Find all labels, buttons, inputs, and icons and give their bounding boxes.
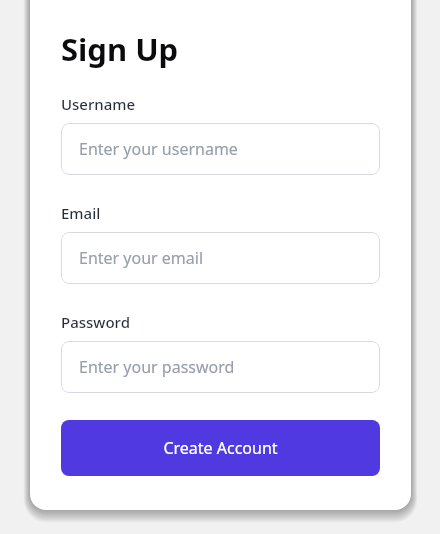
- staticText: Enter your email: [79, 247, 204, 269]
- button[interactable]: Enter your username: [61, 123, 380, 175]
- staticText: Email: [61, 203, 101, 223]
- staticText: Password: [61, 312, 130, 332]
- staticText: Create Account: [163, 437, 278, 459]
- staticText: Enter your username: [79, 138, 238, 160]
- button[interactable]: Enter your password: [61, 341, 380, 393]
- button[interactable]: Enter your email: [61, 232, 380, 284]
- button[interactable]: Create Account: [61, 420, 380, 476]
- staticText: Enter your password: [79, 356, 235, 378]
- staticText: Sign Up: [61, 28, 179, 70]
- staticText: Username: [61, 94, 136, 114]
